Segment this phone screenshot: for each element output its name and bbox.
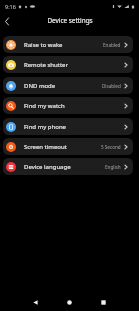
staticText: Find my watch — [24, 102, 65, 110]
staticText: 9:16 — [5, 3, 16, 10]
button[interactable]: Find my watch — [3, 97, 133, 114]
staticText: Disabled — [102, 83, 121, 89]
staticText: Remote shutter — [24, 61, 68, 69]
button[interactable]: Screen timeout — [3, 138, 133, 155]
button[interactable]: Home — [59, 292, 79, 311]
staticText: English — [105, 164, 121, 170]
button[interactable]: Device language — [3, 158, 133, 175]
staticText: DND mode — [24, 82, 56, 90]
button[interactable]: Back — [25, 292, 45, 311]
staticText: Device settings — [47, 16, 93, 25]
button[interactable]: DND mode — [3, 77, 133, 94]
button[interactable]: Recents — [93, 292, 113, 311]
staticText: Screen timeout — [24, 143, 67, 151]
button[interactable]: Back — [0, 14, 14, 28]
staticText: Device language — [24, 163, 71, 171]
staticText: 5 Second — [101, 144, 121, 150]
staticText: Find my phone — [24, 123, 66, 131]
button[interactable]: Remote shutter — [3, 56, 133, 73]
staticText: Enabled — [103, 42, 121, 48]
staticText: Raise to wake — [24, 41, 63, 49]
button[interactable]: Find my phone — [3, 118, 133, 135]
button[interactable]: Raise to wake — [3, 36, 133, 53]
